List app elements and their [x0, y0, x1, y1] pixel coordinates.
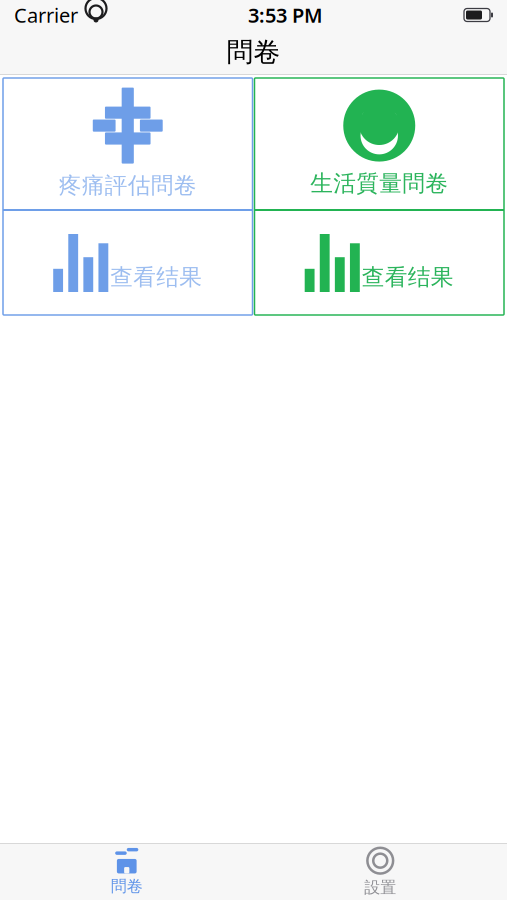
button[interactable]: 查看结果 — [254, 211, 504, 315]
button[interactable]: 生活質量問卷 — [254, 78, 504, 209]
staticText: 問卷 — [226, 36, 280, 68]
button[interactable]: 查看结果 — [3, 211, 252, 315]
button[interactable]: 問卷 — [0, 846, 253, 898]
button[interactable]: 疼痛評估問卷 — [3, 78, 252, 209]
staticText: 問卷 — [111, 876, 143, 896]
staticText: 查看结果 — [362, 263, 454, 291]
staticText: 設置 — [364, 878, 396, 897]
staticText: Carrier — [14, 2, 78, 28]
staticText: 3:53 PM — [248, 2, 323, 28]
staticText: 查看结果 — [110, 263, 202, 291]
staticText: 疼痛評估問卷 — [59, 172, 197, 199]
staticText: 生活質量問卷 — [310, 170, 448, 197]
button[interactable]: 設置 — [253, 846, 507, 898]
